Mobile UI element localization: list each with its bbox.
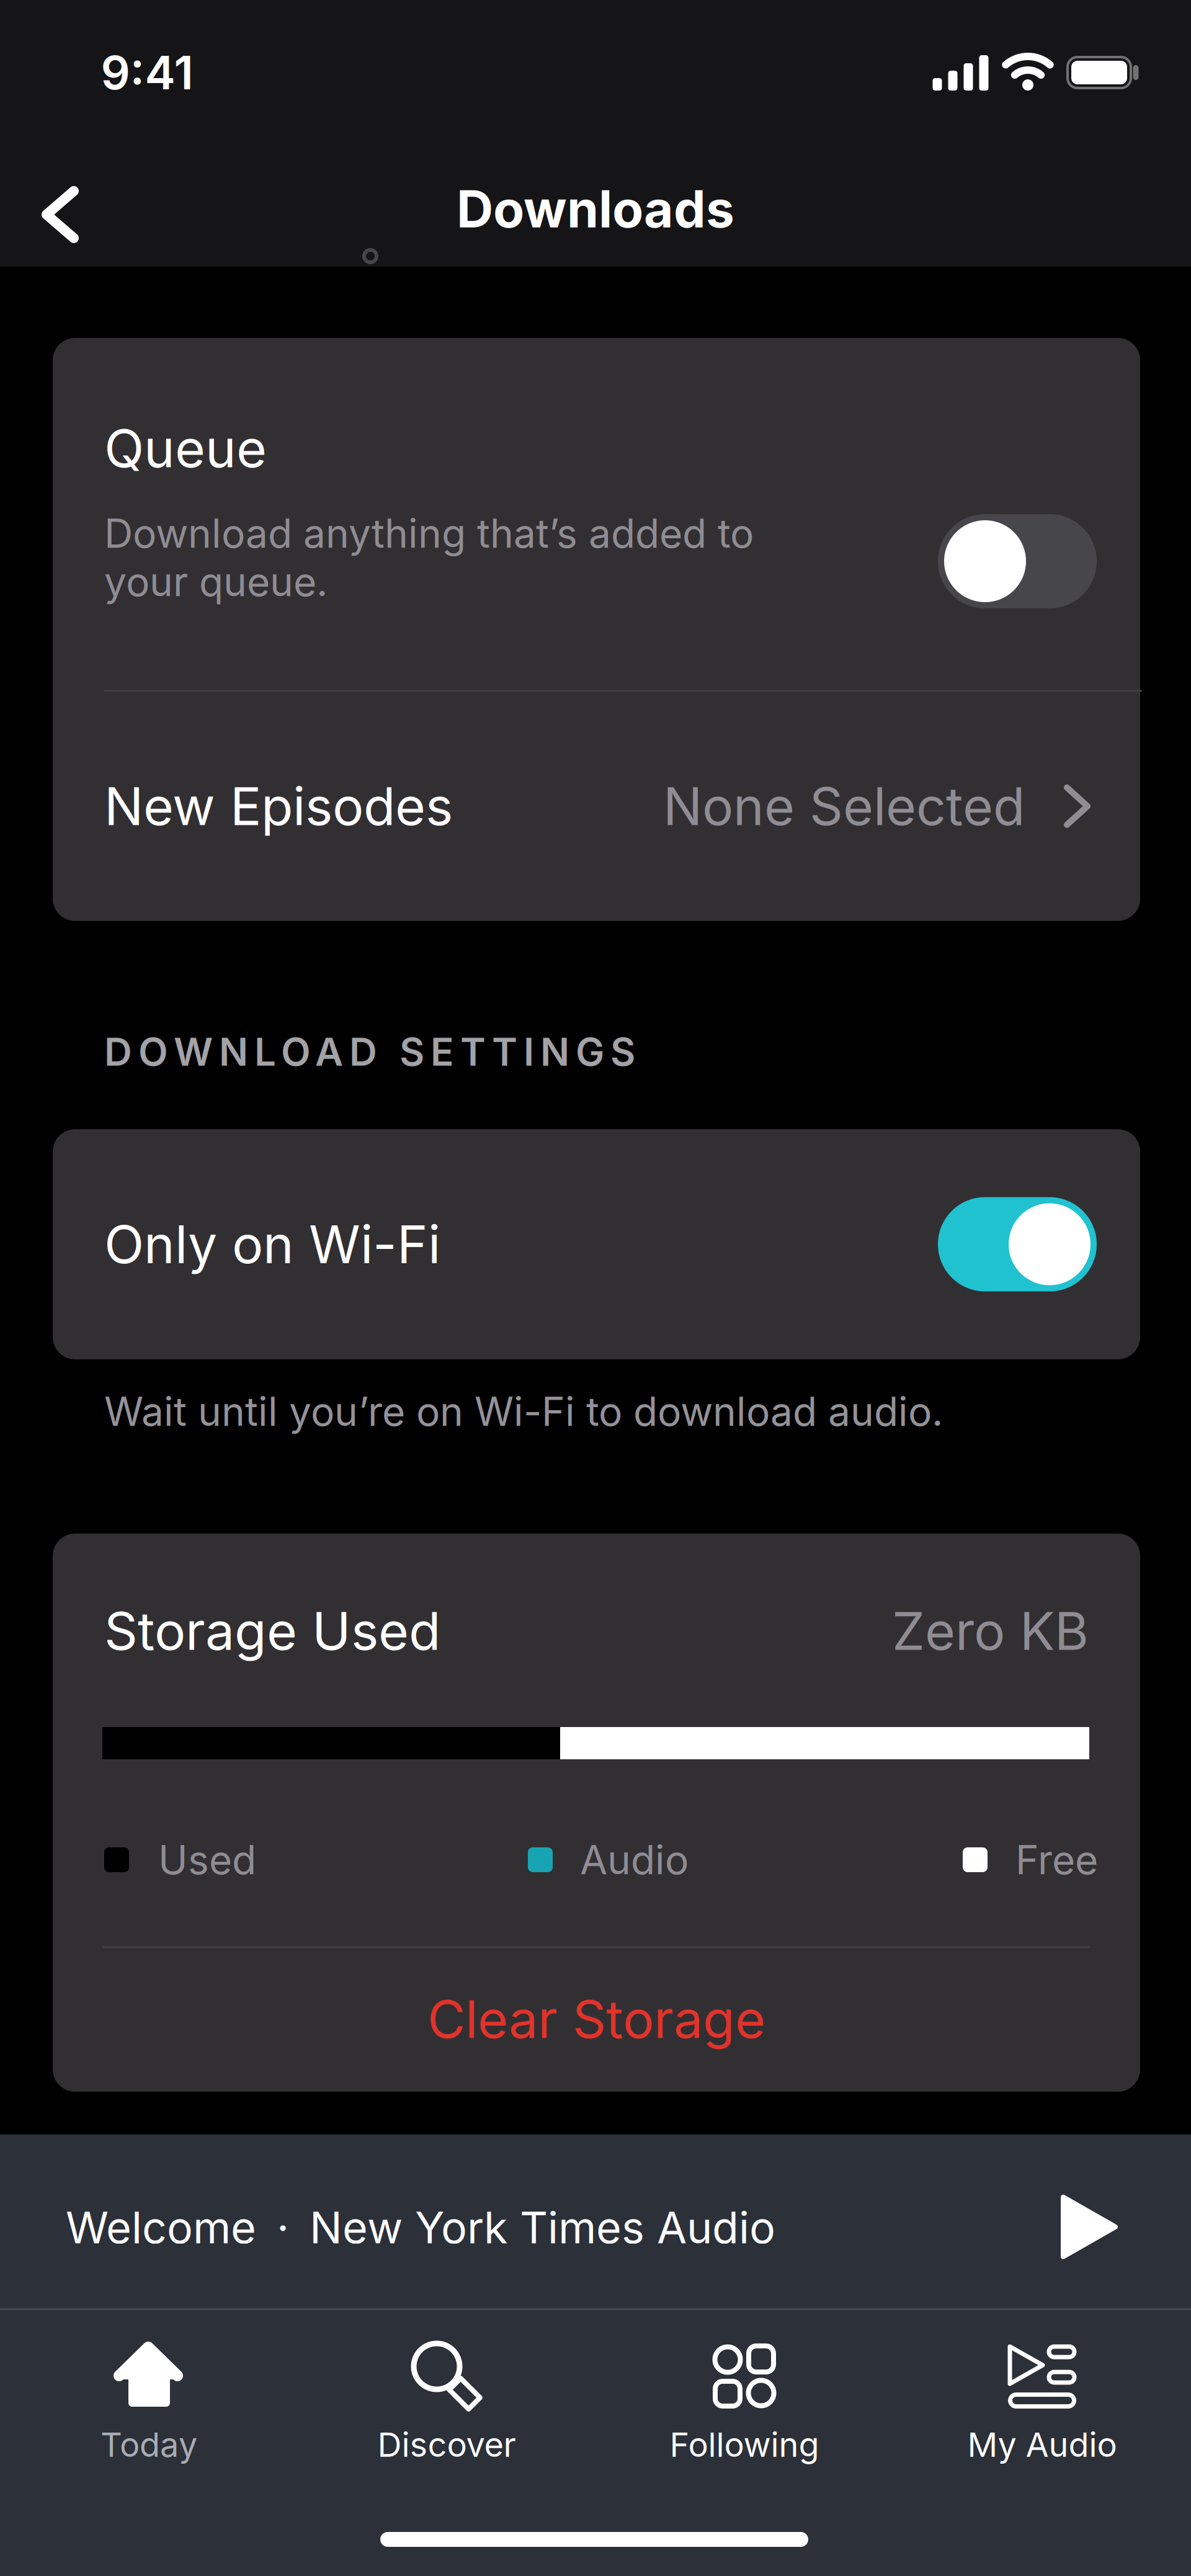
staticText: Queue [104,417,267,480]
button[interactable]: Today [12,2312,285,2498]
staticText: Downloads [457,178,734,240]
button[interactable]: Only on Wi-Fi [938,1197,1097,1291]
staticText: Wait until you’re on Wi-Fi to download a… [104,1387,943,1435]
staticText: My Audio [967,2424,1117,2465]
staticText: Welcome · New York Times Audio [66,2201,775,2254]
staticText: 9:41 [101,45,193,100]
button[interactable]: Download queue [938,514,1097,608]
staticText: Discover [377,2424,516,2465]
staticText: your queue. [104,558,328,606]
button[interactable]: Back [42,189,79,241]
staticText: Storage Used [104,1599,440,1662]
staticText: None Selected [663,775,1025,838]
staticText: DOWNLOAD SETTINGS [104,1028,635,1075]
staticText: Clear Storage [427,1988,765,2051]
staticText: Today [100,2424,197,2465]
staticText: Audio [580,1836,689,1884]
staticText: Used [158,1836,256,1884]
button[interactable]: Following [608,2312,881,2498]
staticText: Only on Wi-Fi [104,1213,440,1276]
staticText: Free [1015,1836,1098,1884]
button[interactable]: My Audio [906,2312,1179,2498]
staticText: Following [670,2424,819,2465]
staticText: New Episodes [104,775,453,838]
button[interactable]: Clear Storage [317,1963,876,2075]
button[interactable]: Play [1061,2195,1118,2259]
button[interactable]: New Episodes [53,691,1140,921]
staticText: Zero KB [892,1599,1089,1662]
button[interactable]: Discover [310,2312,583,2498]
staticText: Download anything that’s added to [104,509,754,557]
button[interactable]: Welcome · New York Times Audio [66,2141,996,2314]
